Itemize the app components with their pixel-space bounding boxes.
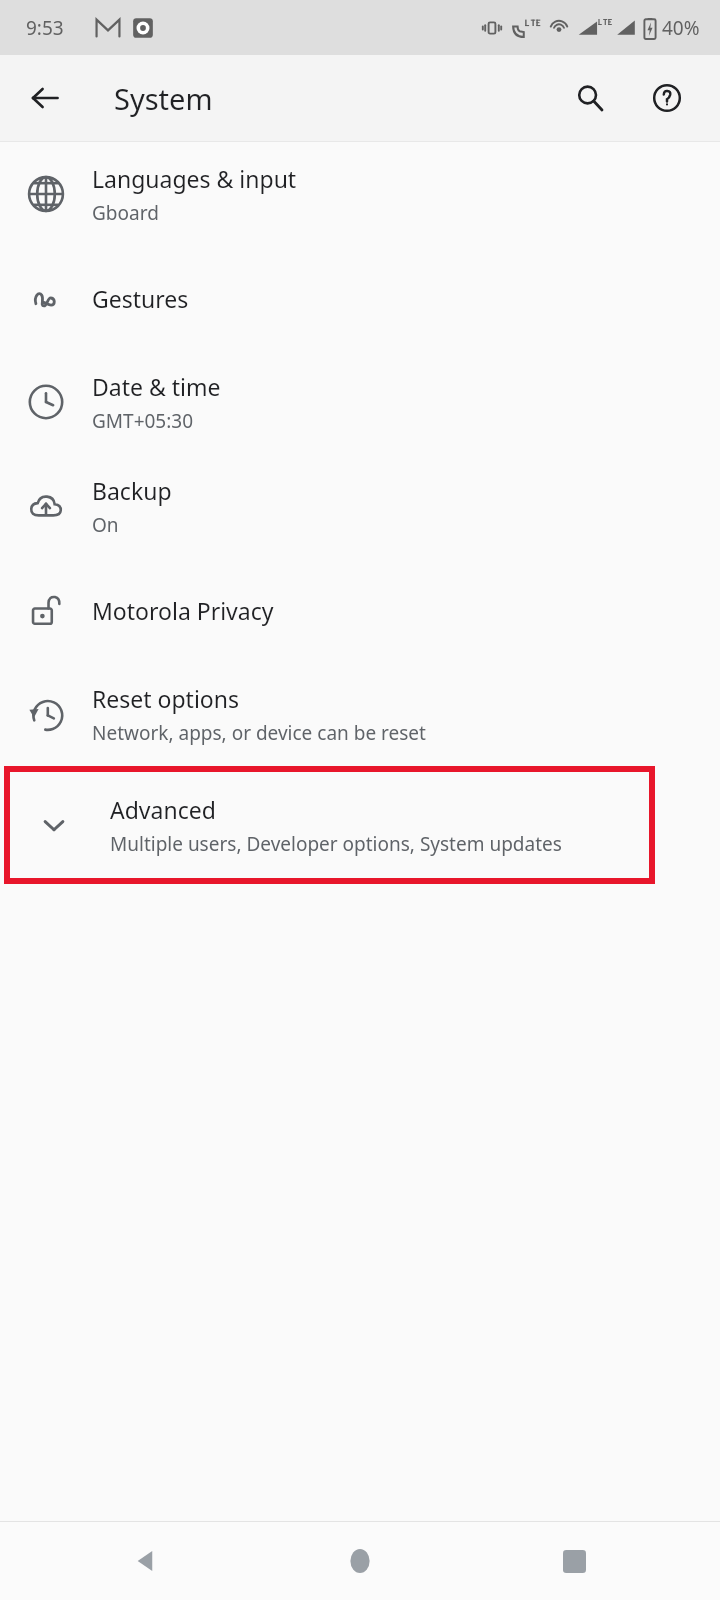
button[interactable]: Gestures — [0, 246, 720, 350]
button[interactable]: Backup — [0, 454, 720, 558]
staticText: Advanced — [110, 794, 216, 825]
button[interactable]: Recent apps — [538, 1525, 610, 1597]
button[interactable]: Help — [639, 70, 695, 126]
button[interactable]: Back — [17, 70, 73, 126]
button[interactable]: Back — [110, 1525, 182, 1597]
staticText: System — [114, 79, 213, 118]
button[interactable]: Motorola Privacy — [0, 558, 720, 662]
staticText: Gboard — [92, 200, 159, 226]
staticText: Motorola Privacy — [92, 595, 274, 626]
staticText: Languages & input — [92, 163, 297, 194]
staticText: 9:53 — [26, 15, 64, 41]
staticText: On — [92, 512, 119, 538]
button[interactable]: Languages & input — [0, 142, 720, 246]
button[interactable]: Search — [562, 70, 618, 126]
staticText: Reset options — [92, 683, 239, 714]
staticText: Backup — [92, 475, 172, 506]
staticText: GMT+05:30 — [92, 408, 194, 434]
button[interactable]: Advanced — [7, 769, 652, 881]
staticText: 40% — [662, 15, 700, 41]
staticText: Date & time — [92, 371, 221, 402]
button[interactable]: Date & time — [0, 350, 720, 454]
staticText: Multiple users, Developer options, Syste… — [110, 831, 562, 857]
staticText: Network, apps, or device can be reset — [92, 720, 426, 746]
button[interactable]: Reset options — [0, 662, 720, 766]
button[interactable]: Home — [324, 1525, 396, 1597]
staticText: Gestures — [92, 283, 189, 314]
